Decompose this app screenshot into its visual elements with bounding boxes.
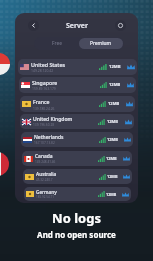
staticText: United States: [31, 61, 66, 68]
staticText: 139.180.24.26: [33, 106, 55, 110]
button[interactable]: Info: [115, 20, 126, 31]
staticText: 12MB: [108, 101, 120, 107]
staticText: 12MB: [107, 119, 119, 124]
staticText: And no open source: [37, 229, 116, 240]
staticText: 12MB: [106, 156, 117, 161]
staticText: 12MB: [109, 64, 121, 70]
staticText: No logs: [52, 209, 101, 227]
button[interactable]: Australia: [23, 169, 132, 184]
button[interactable]: Free: [35, 38, 79, 49]
staticText: 149.28.120.42: [31, 68, 54, 73]
button[interactable]: Netherlands: [21, 132, 133, 147]
staticText: 12MB: [106, 192, 117, 197]
staticText: 139.196.60.28: [33, 123, 55, 127]
button[interactable]: Singapore: [19, 77, 136, 93]
staticText: 149.248.41.46: [35, 160, 56, 164]
button[interactable]: Back: [28, 20, 39, 31]
button[interactable]: France: [20, 96, 135, 112]
staticText: Free: [52, 40, 62, 47]
staticText: 167.107.13.82: [34, 141, 55, 145]
staticText: Singapore: [32, 79, 58, 86]
staticText: Server: [66, 21, 88, 31]
button[interactable]: United Kingdom: [20, 114, 134, 129]
button[interactable]: Germany: [24, 187, 131, 201]
staticText: Netherlands: [34, 134, 64, 141]
staticText: France: [33, 99, 50, 106]
staticText: 45.32.240.7: [36, 178, 53, 182]
staticText: Australia: [36, 171, 57, 178]
staticText: Germany: [36, 189, 57, 195]
staticText: United Kingdom: [33, 116, 73, 123]
button[interactable]: Premium: [79, 38, 123, 49]
button[interactable]: United States: [18, 59, 137, 75]
staticText: 12MB: [107, 174, 118, 179]
staticText: Premium: [90, 40, 112, 47]
staticText: 159.89.163.179: [32, 86, 56, 91]
staticText: 185.92.54.71: [36, 195, 54, 199]
button[interactable]: Canada: [22, 151, 132, 166]
staticText: 12MB: [107, 137, 118, 142]
staticText: 12MB: [109, 82, 121, 88]
staticText: Canada: [35, 153, 53, 160]
